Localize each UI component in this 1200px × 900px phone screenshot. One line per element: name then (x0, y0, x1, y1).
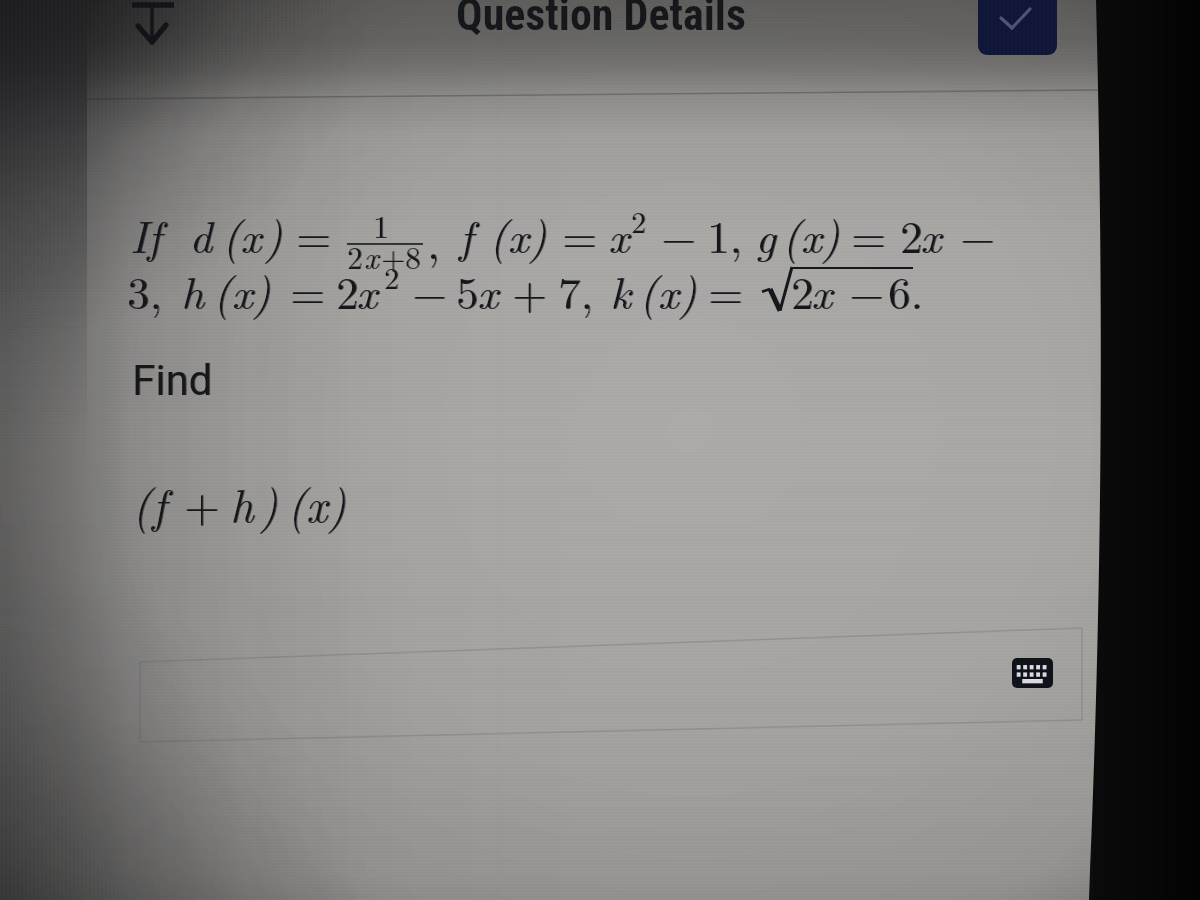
staticText: 2 (336, 258, 359, 322)
staticText: 2 (348, 234, 364, 278)
staticText: x (357, 258, 378, 322)
staticText: = (296, 202, 332, 266)
staticText: 7, (558, 258, 594, 322)
button[interactable] (136, 618, 1084, 748)
staticText: 1, (707, 202, 743, 266)
staticText: g (756, 202, 777, 266)
staticText: ) (260, 470, 279, 535)
staticText: = (290, 258, 326, 322)
staticText: + (513, 258, 549, 322)
staticText: (x) (287, 470, 346, 535)
staticText: ( (133, 470, 152, 535)
staticText: +8 (382, 234, 422, 278)
staticText: x (920, 202, 941, 266)
staticText: (x) (490, 202, 548, 266)
staticText: h (181, 258, 204, 322)
staticText: − (960, 202, 996, 266)
staticText: g (755, 202, 776, 266)
staticText: If (131, 202, 163, 266)
staticText: 3, (127, 258, 163, 322)
staticText: 5 (456, 258, 479, 322)
staticText: + (512, 258, 548, 322)
staticText: f (459, 202, 473, 266)
staticText: ) (264, 202, 283, 266)
staticText: f (152, 470, 167, 535)
staticText: 7, (559, 258, 595, 322)
staticText: (x) (489, 202, 547, 266)
staticText: 1 (374, 203, 390, 247)
staticText: k (610, 258, 631, 322)
staticText: 2 (901, 202, 924, 266)
staticText: , (428, 208, 441, 272)
staticText: k (611, 258, 632, 322)
staticText: +8 (381, 234, 421, 278)
staticText: 2 (385, 255, 400, 298)
staticText: ( (132, 470, 151, 535)
staticText: h (230, 470, 254, 535)
staticText: = (297, 202, 333, 266)
staticText: = (852, 202, 888, 266)
staticText: , (427, 208, 440, 272)
staticText: = (563, 202, 599, 266)
staticText: f (460, 202, 474, 266)
staticText: + (185, 470, 221, 535)
staticText: ( (223, 202, 242, 266)
staticText: = (709, 258, 745, 322)
staticText: − (412, 258, 448, 322)
staticText: (x) (639, 258, 697, 322)
staticText: (x) (213, 258, 271, 322)
staticText: h (182, 258, 205, 322)
staticText: x (811, 258, 832, 322)
staticText: (x) (782, 202, 840, 266)
staticText: 2 (337, 258, 360, 322)
staticText: − (662, 202, 698, 266)
staticText: 5 (457, 258, 480, 322)
staticText: 1, (708, 202, 744, 266)
staticText: x (240, 202, 261, 266)
staticText: (x) (214, 258, 272, 322)
staticText: x (608, 202, 629, 266)
staticText: (x) (288, 470, 347, 535)
button[interactable]: Hide keyboard (120, 0, 186, 56)
staticText: 2 (632, 199, 647, 242)
staticText: (x) (783, 202, 841, 266)
staticText: ( (222, 202, 241, 266)
staticText: h (231, 470, 255, 535)
staticText: x (241, 202, 262, 266)
staticText: f (153, 470, 168, 535)
staticText: x (356, 258, 377, 322)
staticText: 3, (128, 258, 164, 322)
staticText: = (708, 258, 744, 322)
staticText: 1 (373, 203, 389, 247)
staticText: 6. (888, 258, 924, 322)
staticText: Question Details (456, 0, 746, 41)
staticText: Find (132, 356, 213, 405)
staticText: x (921, 202, 942, 266)
staticText: = (291, 258, 327, 322)
button[interactable]: Show keyboard (1012, 658, 1053, 688)
staticText: If (130, 202, 162, 266)
staticText: − (850, 258, 886, 322)
staticText: + (184, 470, 220, 535)
staticText: − (961, 202, 997, 266)
staticText: d (190, 202, 213, 266)
staticText: 2 (900, 202, 923, 266)
staticText: ) (259, 470, 278, 535)
staticText: x (477, 258, 498, 322)
staticText: d (189, 202, 212, 266)
staticText: − (413, 258, 449, 322)
staticText: = (562, 202, 598, 266)
staticText: = (851, 202, 887, 266)
staticText: x (364, 234, 379, 278)
staticText: 2 (347, 234, 363, 278)
staticText: 2 (384, 255, 399, 298)
staticText: x (478, 258, 499, 322)
staticText: ) (265, 202, 284, 266)
staticText: 2 (791, 258, 814, 322)
button[interactable]: Submit answer (978, 0, 1057, 55)
staticText: x (609, 202, 630, 266)
staticText: − (661, 202, 697, 266)
staticText: 2 (792, 258, 815, 322)
staticText: x (812, 258, 833, 322)
staticText: − (849, 258, 885, 322)
